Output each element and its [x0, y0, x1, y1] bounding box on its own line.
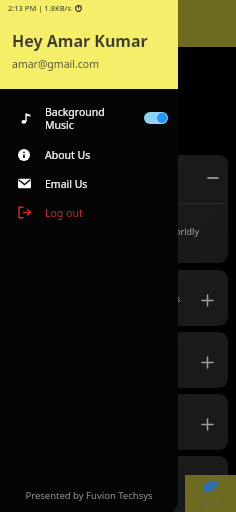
- button[interactable]: Background Music: [0, 96, 178, 140]
- button[interactable]: [168, 456, 228, 512]
- staticText: ids: [168, 292, 181, 304]
- staticText: worldly: [168, 225, 200, 237]
- staticText: Email Us: [45, 177, 88, 191]
- button[interactable]: [168, 394, 228, 450]
- staticText: Log out: [45, 206, 83, 220]
- button[interactable]: ids: [168, 270, 228, 326]
- staticText: Background Music: [45, 105, 105, 132]
- staticText: Hey Amar Kumar: [12, 30, 148, 52]
- staticText: Presented by Fuvion Techsys: [25, 489, 153, 502]
- button[interactable]: [168, 332, 228, 388]
- staticText: About Us: [45, 148, 91, 162]
- staticText: QnA: [202, 497, 219, 508]
- button[interactable]: Log out: [0, 198, 178, 227]
- staticText: amar@gmail.com: [12, 57, 99, 71]
- staticText: 2:13 PM | 1.8KB/s: [8, 3, 72, 13]
- button[interactable]: About Us: [0, 140, 178, 169]
- button[interactable]: Email Us: [0, 169, 178, 198]
- button[interactable]: QnA: [185, 475, 236, 512]
- button[interactable]: Background music toggle: [144, 112, 168, 124]
- button[interactable]: worldly: [168, 155, 228, 263]
